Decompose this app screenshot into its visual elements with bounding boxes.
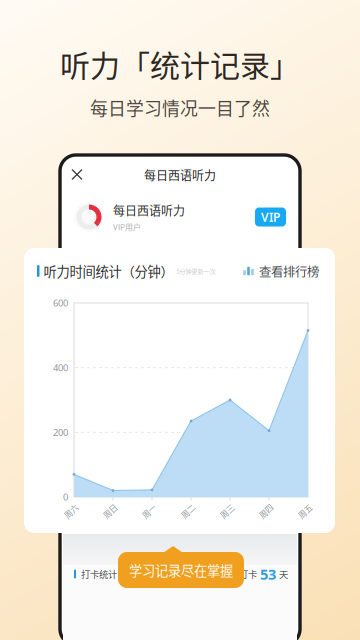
staticText: 周日 (102, 505, 118, 517)
button[interactable]: VIP (255, 207, 286, 226)
staticText: 5分钟更新一次 (176, 267, 215, 275)
staticText: 周三 (219, 505, 235, 517)
staticText: 打卡统计 (81, 567, 117, 581)
staticText: 周五 (297, 505, 313, 517)
staticText: 天 (279, 567, 288, 581)
staticText: 周四 (258, 505, 274, 517)
staticText: 周二 (180, 505, 196, 517)
staticText: 听力「统计记录」 (60, 42, 300, 85)
staticText: 每日西语听力 (144, 166, 216, 184)
staticText: 0 (63, 491, 68, 503)
staticText: 400 (53, 361, 68, 374)
staticText: 200 (53, 426, 68, 438)
staticText: 查看排行榜 (259, 262, 319, 280)
staticText: 每日西语听力 (113, 201, 185, 219)
button[interactable]: 查看排行榜 (243, 262, 319, 280)
staticText: 周一 (141, 505, 157, 517)
staticText: 每日学习情况一目了然 (90, 94, 270, 120)
staticText: 53 (260, 564, 276, 584)
staticText: 学习记录尽在掌握 (129, 560, 233, 580)
staticText: 600 (53, 297, 68, 309)
button[interactable]: Close (65, 162, 89, 187)
staticText: VIP (261, 209, 280, 225)
staticText: 打卡 (239, 567, 257, 581)
staticText: 听力时间统计（分钟） (43, 261, 173, 281)
staticText: VIP用户 (113, 221, 141, 232)
staticText: 周六 (63, 505, 79, 517)
